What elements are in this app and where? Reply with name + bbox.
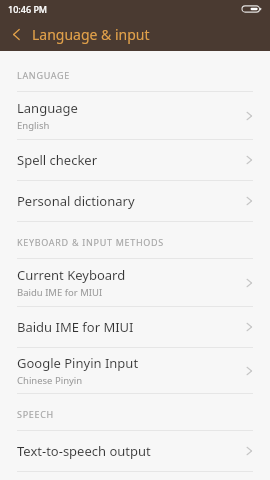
staticText: Personal dictionary [17,192,135,210]
button[interactable]: Personal dictionary [0,181,270,221]
staticText: KEYBOARD & INPUT METHODS [17,236,164,248]
button[interactable]: Text-to-speech output [0,431,270,471]
button[interactable]: Baidu IME for MIUI [0,307,270,347]
staticText: LANGUAGE [17,69,71,81]
staticText: Language & input [32,25,150,44]
staticText: 10:46 PM [8,3,48,15]
staticText: Current Keyboard [17,266,126,284]
staticText: Text-to-speech output [17,442,151,460]
staticText: Language [17,99,78,117]
staticText: Spell checker [17,151,98,169]
staticText: Baidu IME for MIUI [17,318,134,336]
button[interactable]: Google Pinyin Input [0,348,270,393]
staticText: SPEECH [17,408,54,420]
staticText: English [17,119,50,132]
staticText: Chinese Pinyin [17,374,83,387]
button[interactable]: Language [0,92,270,139]
button[interactable]: Spell checker [0,140,270,180]
staticText: Baidu IME for MIUI [17,286,103,299]
button[interactable]: Current Keyboard [0,259,270,306]
staticText: Google Pinyin Input [17,354,139,372]
button[interactable]: Back [0,18,32,51]
